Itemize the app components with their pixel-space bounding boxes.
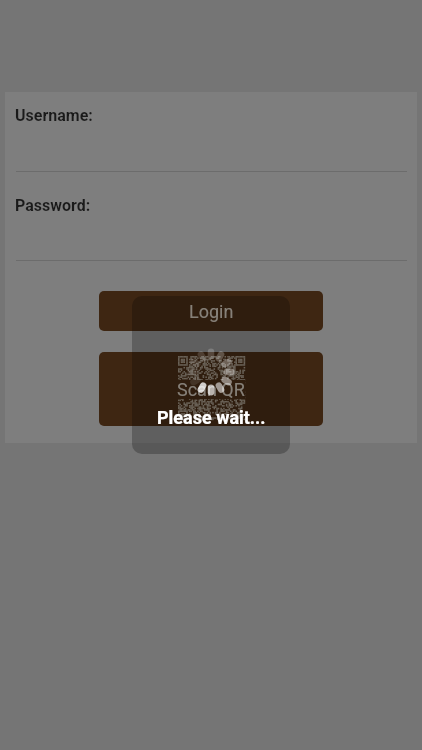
button[interactable]: Login	[99, 291, 323, 331]
staticText: Please wait...	[157, 407, 266, 428]
staticText: Scan QR	[177, 379, 245, 400]
staticText: Password:	[15, 196, 91, 215]
staticText: Username:	[15, 106, 93, 125]
staticText: Login	[189, 301, 234, 322]
button[interactable]: Scan QR	[99, 352, 323, 426]
